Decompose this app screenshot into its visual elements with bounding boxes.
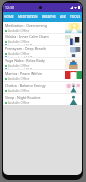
button[interactable]: Yoga Nidra : Relax Body [3,58,82,69]
staticText: Meditation : Overcoming Negativity [5,23,64,28]
button[interactable]: Mantra : Peace Within [3,70,82,81]
staticText: Sleep : Night Routine [5,95,41,100]
button[interactable]: HOME [3,12,15,22]
staticText: Last updated 16 May [8,44,36,45]
staticText: Available Offline [8,64,30,68]
button[interactable]: TOOLS [68,12,82,22]
staticText: Chakra : Balance Energy [5,83,46,88]
staticText: Pranayam : Deep Breath [5,46,47,51]
staticText: Available Offline [8,101,30,105]
staticText: Available Offline [8,77,30,81]
button[interactable]: Meditation : Overcoming Negativity [3,22,82,33]
staticText: Last updated 09 May [8,68,36,69]
button[interactable]: MEDITATION [15,12,40,22]
button[interactable]: BREATHE [40,12,57,22]
staticText: Available Offline [8,52,30,56]
staticText: Yoga Nidra : Relax Body [5,58,45,63]
staticText: Last updated 14 May [8,56,36,57]
button[interactable]: Pranayam : Deep Breath [3,46,82,57]
button[interactable]: ASK [57,12,68,22]
button[interactable]: Shloka : Inner Calm Chant [3,34,82,45]
staticText: TOOLS [70,15,81,19]
staticText: MEDITATION [18,15,38,19]
staticText: ASK [60,15,66,19]
staticText: Available Offline [8,29,30,33]
staticText: HOME [4,15,14,19]
staticText: Available Offline [8,89,30,93]
staticText: Available Offline [8,40,30,44]
button[interactable]: Chakra : Balance Energy [3,82,82,93]
button[interactable]: Sleep : Night Routine [3,94,82,105]
staticText: Shloka : Inner Calm Chant [5,34,49,39]
staticText: BREATHE [42,15,56,19]
staticText: Mantra : Peace Within [5,71,42,76]
staticText: 12:30 [5,5,14,10]
